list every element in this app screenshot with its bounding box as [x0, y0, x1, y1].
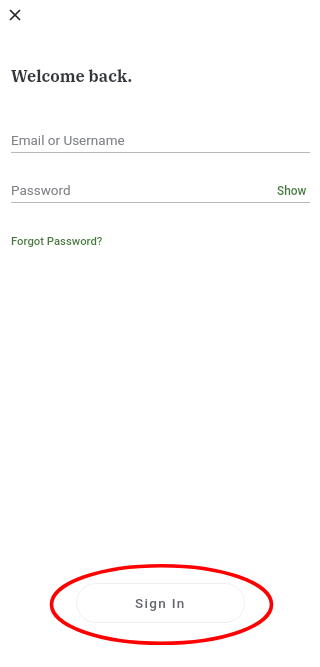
button[interactable]: Close [0, 0, 30, 30]
staticText: Sign In [135, 595, 186, 611]
staticText: Password [11, 182, 71, 198]
button[interactable]: Forgot Password? [4, 230, 110, 253]
button[interactable]: Sign In [76, 583, 245, 623]
staticText: Forgot Password? [11, 235, 103, 248]
button[interactable]: Show [269, 179, 313, 203]
staticText: Welcome back. [11, 65, 133, 86]
staticText: Email or Username [11, 132, 125, 148]
staticText: Show [277, 184, 307, 198]
